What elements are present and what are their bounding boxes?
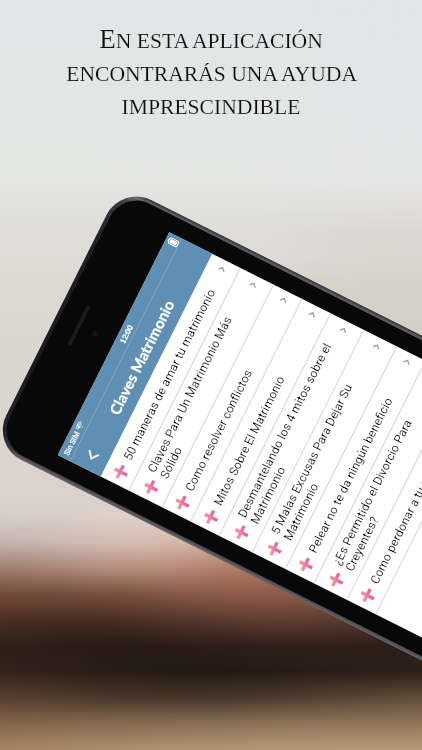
button[interactable]: Como perdonar a tu pareja — [347, 377, 422, 614]
button[interactable]: 50 maneras de amar tu matrimonio — [101, 254, 240, 490]
staticText: 50 maneras de amar tu matrimonio — [121, 271, 226, 463]
staticText: 12:00 — [118, 323, 135, 345]
button[interactable]: ¿Es Permitido el Divorcio Para Creyentes… — [314, 361, 422, 600]
button[interactable]: 5 Malas Excusas Para Dejar Su Matrimonio — [253, 330, 396, 569]
staticText: 5 Malas Excusas Para Dejar Su Matrimonio — [268, 345, 386, 543]
staticText: Pelear no te da ningún beneficio — [306, 364, 411, 555]
button[interactable]: Como resolver conflictos — [162, 285, 302, 521]
button[interactable]: Back — [72, 435, 112, 476]
staticText: Como perdonar a tu pareja — [368, 395, 422, 586]
staticText: Claves Para Un Matrimonio Más Sólido — [145, 283, 263, 481]
staticText: Mitos Sobre El Matrimonio — [211, 316, 316, 508]
staticText: Desmantelando los 4 mitos sobre el Matri… — [235, 329, 353, 526]
staticText: ¿Es Permitido el Divorcio Para Creyentes… — [330, 376, 422, 574]
staticText: Claves Matrimonio — [105, 297, 178, 417]
button[interactable]: Desmantelando los 4 mitos sobre el Matri… — [220, 313, 363, 552]
staticText: Sin SIM — [62, 429, 82, 457]
button[interactable]: Mitos Sobre El Matrimonio — [191, 299, 330, 536]
button[interactable]: Claves Para Un Matrimonio Más Sólido — [129, 268, 273, 507]
staticText: Como resolver conflictos — [183, 302, 288, 494]
button[interactable]: Pelear no te da ningún beneficio — [286, 346, 422, 583]
staticText: EN ESTA APLICACIÓN ENCONTRARÁS UNA AYUDA… — [36, 24, 386, 119]
